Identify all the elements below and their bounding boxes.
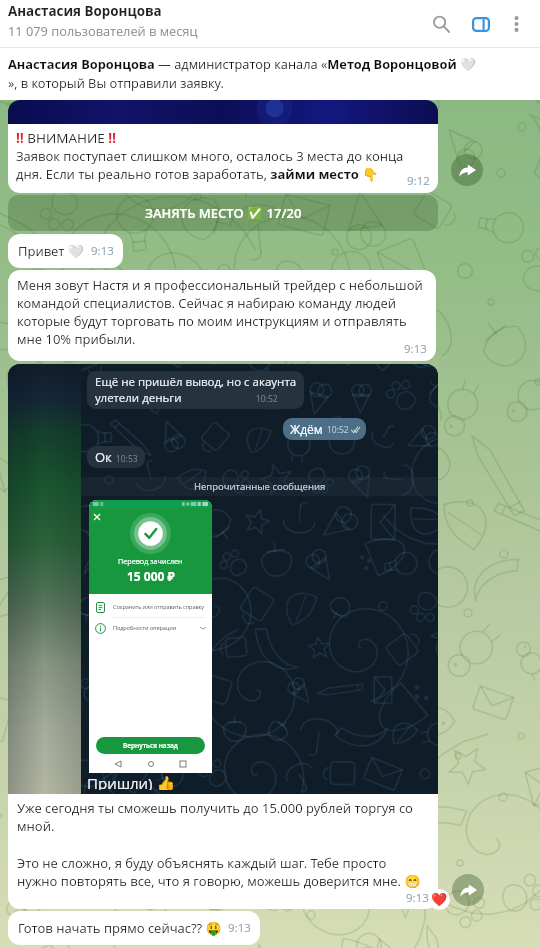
- staticText: 9:12: [407, 173, 430, 189]
- staticText: улетели деньги: [95, 390, 182, 406]
- button[interactable]: Heart reaction: [429, 889, 450, 910]
- button[interactable]: Close: [92, 512, 102, 522]
- staticText: Перевод зачислен: [118, 556, 183, 566]
- staticText: Готов начать прямо сейчас?? 🤑: [18, 919, 222, 937]
- button[interactable]: Ждём: [283, 418, 366, 440]
- staticText: 9:13: [406, 890, 429, 906]
- button[interactable]: Ещё не пришёл вывод, но с акаунта: [87, 371, 304, 409]
- staticText: ❤️: [431, 892, 448, 907]
- button[interactable]: Forward: [451, 154, 483, 186]
- button[interactable]: Ок: [87, 446, 145, 468]
- staticText: Анастасия Воронцова — администратор кана…: [8, 55, 476, 92]
- button[interactable]: More options: [494, 2, 538, 46]
- button[interactable]: Привет 🤍: [8, 234, 123, 268]
- staticText: ‼ ВНИМАНИЕ ‼: [16, 129, 116, 147]
- button[interactable]: Side panel: [459, 2, 503, 46]
- button[interactable]: Подробности операции: [95, 618, 206, 638]
- staticText: Подробности операции: [113, 624, 177, 632]
- staticText: Уже сегодня ты сможешь получить до 15.00…: [17, 799, 429, 835]
- staticText: Пришли) 👍: [87, 773, 176, 790]
- staticText: 9:13: [91, 243, 114, 259]
- staticText: 10:53: [116, 453, 138, 465]
- staticText: 10:52: [256, 393, 278, 405]
- button[interactable]: Photo: [8, 364, 438, 794]
- button[interactable]: ЗАНЯТЬ МЕСТО ✅ 17/20: [8, 195, 438, 231]
- staticText: Ок: [95, 448, 112, 466]
- staticText: Вернуться назад: [123, 741, 178, 750]
- staticText: Сохранить или отправить справку: [113, 603, 204, 611]
- staticText: 11 079 пользователей в месяц: [8, 22, 198, 39]
- staticText: ЗАНЯТЬ МЕСТО ✅ 17/20: [145, 204, 302, 222]
- button[interactable]: Готов начать прямо сейчас?? 🤑: [8, 911, 260, 945]
- staticText: 9:13: [228, 920, 251, 936]
- button[interactable]: Меня зовут Настя и я профессиональный тр…: [8, 270, 436, 361]
- button[interactable]: Сохранить или отправить справку: [95, 597, 206, 617]
- staticText: Меня зовут Настя и я профессиональный тр…: [17, 276, 427, 348]
- staticText: Ждём: [290, 421, 323, 437]
- button[interactable]: Forward: [452, 874, 484, 906]
- staticText: Анастасия Воронцова: [8, 2, 162, 20]
- staticText: Непрочитанные сообщения: [194, 480, 326, 493]
- staticText: Ещё не пришёл вывод, но с акаунта: [95, 374, 297, 390]
- button[interactable]: Вернуться назад: [96, 737, 205, 754]
- staticText: Привет 🤍: [18, 242, 85, 260]
- staticText: Заявок поступает слишком много, осталось…: [16, 147, 430, 183]
- staticText: 10:52: [327, 424, 349, 436]
- button[interactable]: Search: [419, 2, 463, 46]
- staticText: Это не сложно, я буду объяснять каждый ш…: [17, 854, 429, 890]
- staticText: 9:13: [404, 341, 427, 357]
- staticText: 15 000 ₽: [127, 568, 175, 584]
